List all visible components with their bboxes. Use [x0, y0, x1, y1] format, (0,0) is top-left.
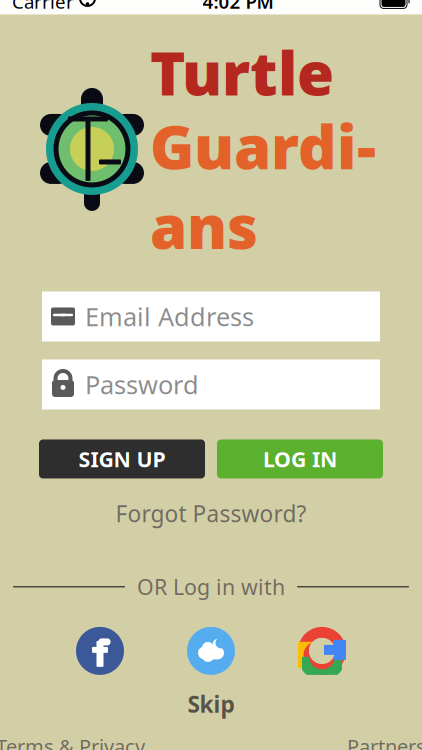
button[interactable]: Log in with Google: [298, 627, 346, 675]
staticText: SIGN UP: [78, 445, 165, 473]
button[interactable]: Forgot Password?: [101, 492, 320, 535]
button[interactable]: Log in with Twitter: [187, 627, 235, 675]
staticText: Skip: [187, 689, 234, 719]
button[interactable]: Email Address: [42, 291, 380, 341]
staticText: Email Address: [85, 300, 254, 333]
staticText: Guardians: [150, 106, 376, 265]
staticText: Forgot Password?: [115, 498, 306, 529]
staticText: Carrier: [12, 0, 74, 14]
button[interactable]: Log in with Facebook: [76, 627, 124, 675]
button[interactable]: LOG IN: [217, 439, 383, 478]
button[interactable]: Partners: [347, 733, 422, 750]
staticText: Password: [85, 368, 199, 401]
staticText: 4:02 PM: [202, 0, 273, 14]
button[interactable]: SIGN UP: [39, 439, 205, 478]
staticText: Terms & Privacy: [0, 733, 145, 750]
button[interactable]: Password: [42, 359, 380, 409]
staticText: LOG IN: [263, 445, 337, 473]
staticText: Partners: [347, 733, 422, 750]
button[interactable]: Skip: [165, 683, 256, 725]
staticText: Turtle: [150, 32, 334, 112]
button[interactable]: Terms & Privacy: [0, 733, 145, 750]
staticText: OR Log in with: [137, 573, 285, 601]
